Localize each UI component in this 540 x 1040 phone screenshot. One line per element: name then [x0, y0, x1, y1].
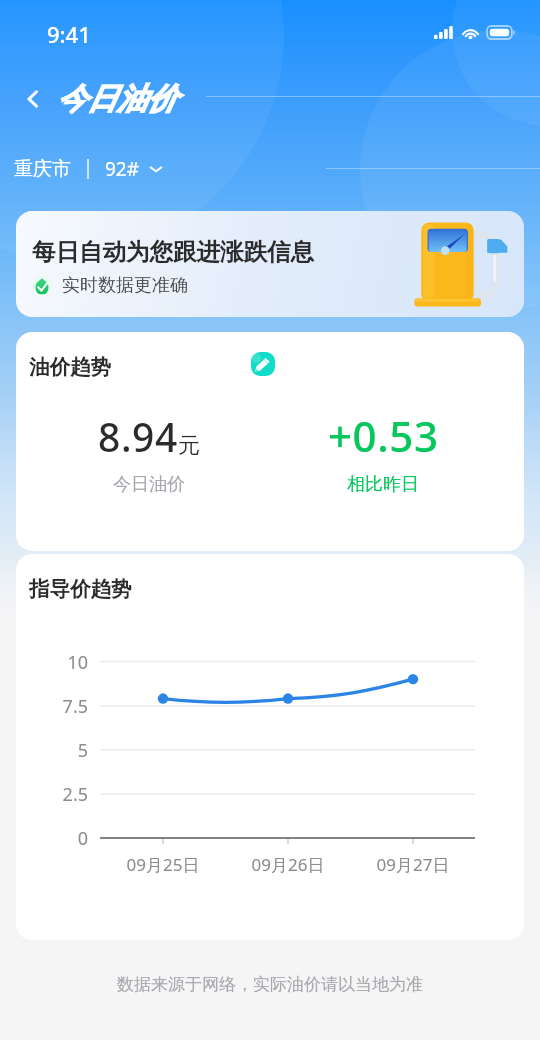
staticText: 2.5 [32, 782, 88, 807]
staticText: 油价趋势 [29, 354, 111, 380]
staticText: 09月27日 [353, 853, 473, 876]
staticText: 指导价趋势 [29, 576, 132, 602]
staticText: 数据来源于网络，实际油价请以当地为准 [0, 974, 540, 995]
button[interactable]: 重庆市 [0, 150, 171, 204]
staticText: 09月26日 [228, 853, 348, 876]
staticText: 重庆市 [14, 157, 71, 181]
staticText: 实时数据更准确 [62, 274, 188, 297]
staticText: 元 [178, 432, 200, 460]
staticText: 5 [32, 738, 88, 763]
staticText: 10 [32, 650, 88, 675]
button[interactable]: Edit [251, 352, 275, 376]
staticText: +0.53 [328, 407, 439, 464]
staticText: 8.94 [98, 410, 178, 463]
staticText: 每日自动为您跟进涨跌信息 [32, 237, 314, 267]
button[interactable]: Back [12, 78, 54, 120]
staticText: 7.5 [32, 694, 88, 719]
staticText: 相比昨日 [347, 473, 419, 496]
staticText: 今日油价 [113, 473, 185, 496]
staticText: 0 [32, 826, 88, 851]
staticText: 今日油价 [57, 80, 177, 118]
staticText: 09月25日 [103, 853, 223, 876]
staticText: 92# [105, 156, 140, 182]
button[interactable]: 每日自动为您跟进涨跌信息 [16, 211, 524, 317]
staticText: 9:41 [47, 19, 91, 49]
